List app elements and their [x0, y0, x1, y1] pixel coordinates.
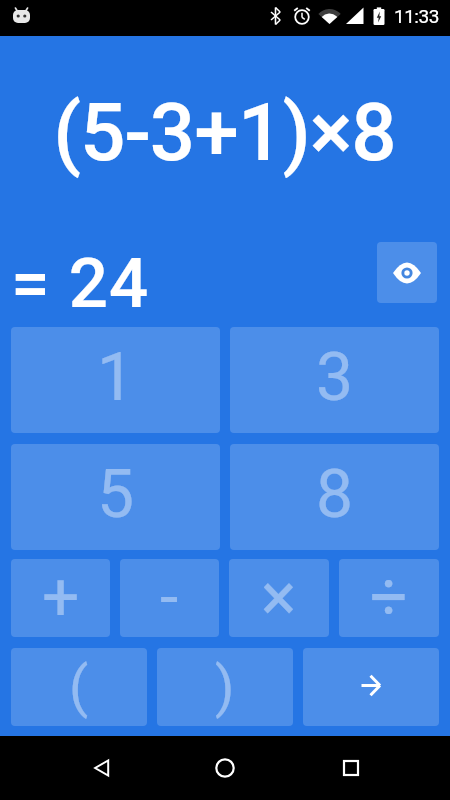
button[interactable] [377, 242, 437, 303]
staticText: ÷ [370, 559, 408, 636]
button[interactable]: ÷ [339, 559, 439, 637]
button[interactable] [193, 736, 257, 800]
button[interactable]: × [229, 559, 329, 637]
staticText: 3 [316, 339, 354, 416]
button[interactable]: 1 [11, 327, 220, 433]
button[interactable]: ( [11, 648, 147, 726]
staticText: 5 [97, 456, 135, 533]
staticText: = 24 [11, 243, 150, 324]
staticText: 8 [316, 456, 354, 533]
staticText: ( [69, 654, 89, 720]
staticText: + [42, 559, 80, 636]
button[interactable]: + [11, 559, 110, 637]
staticText: 11:33 [394, 5, 439, 27]
button[interactable]: 5 [11, 444, 220, 550]
button[interactable] [303, 648, 439, 726]
button[interactable]: ) [157, 648, 293, 726]
staticText: ) [215, 654, 235, 720]
button[interactable] [67, 736, 131, 800]
staticText: (5-3+1)×8 [53, 86, 396, 180]
button[interactable]: 3 [230, 327, 439, 433]
button[interactable]: 8 [230, 444, 439, 550]
staticText: - [160, 559, 179, 636]
staticText: 1 [97, 339, 135, 416]
button[interactable]: - [120, 559, 219, 637]
button[interactable] [319, 736, 383, 800]
staticText: × [261, 559, 297, 636]
